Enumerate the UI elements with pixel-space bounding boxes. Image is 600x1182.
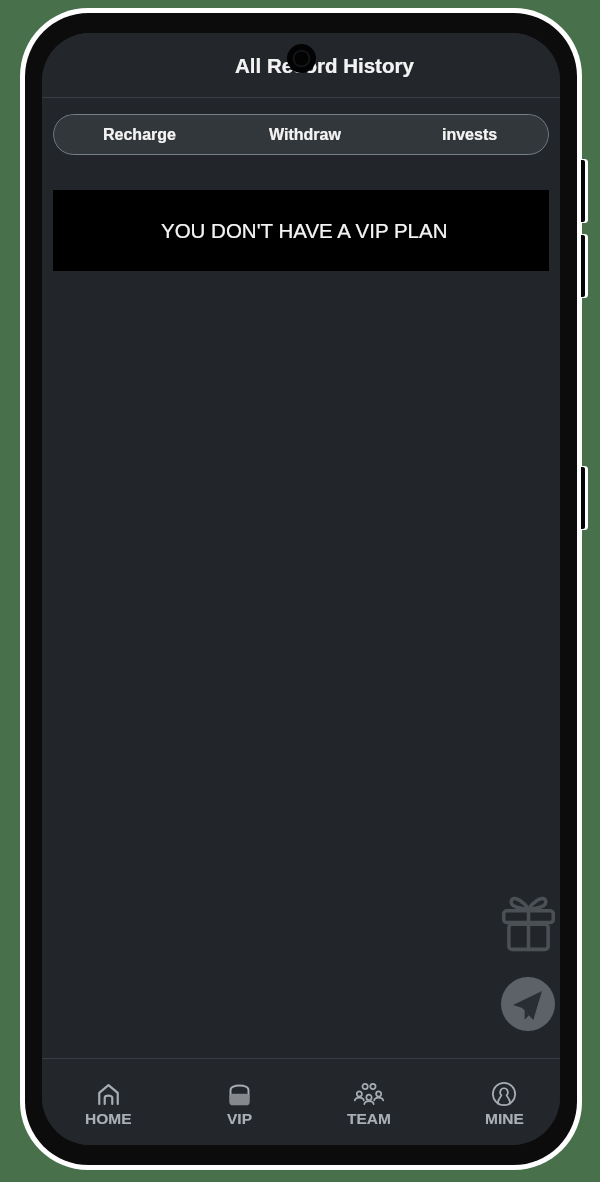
button[interactable]: Recharge xyxy=(53,114,219,155)
staticText: HOME xyxy=(85,1110,132,1127)
button[interactable]: invests xyxy=(384,114,549,155)
staticText: YOU DON'T HAVE A VIP PLAN xyxy=(161,219,448,242)
button[interactable]: MINE xyxy=(430,1059,560,1145)
button[interactable]: Telegram support xyxy=(501,977,555,1031)
button[interactable]: Gift rewards xyxy=(499,894,557,952)
button[interactable]: HOME xyxy=(42,1059,171,1145)
staticText: Recharge xyxy=(103,126,176,144)
staticText: MINE xyxy=(485,1110,524,1127)
button[interactable]: Withdraw xyxy=(219,114,384,155)
button[interactable]: TEAM xyxy=(300,1059,430,1145)
staticText: VIP xyxy=(227,1110,252,1127)
staticText: Withdraw xyxy=(269,126,341,144)
staticText: All Record History xyxy=(235,54,414,77)
staticText: invests xyxy=(442,126,498,144)
staticText: TEAM xyxy=(347,1110,391,1127)
button[interactable]: YOU DON'T HAVE A VIP PLAN xyxy=(53,190,549,271)
button[interactable]: VIP xyxy=(171,1059,300,1145)
